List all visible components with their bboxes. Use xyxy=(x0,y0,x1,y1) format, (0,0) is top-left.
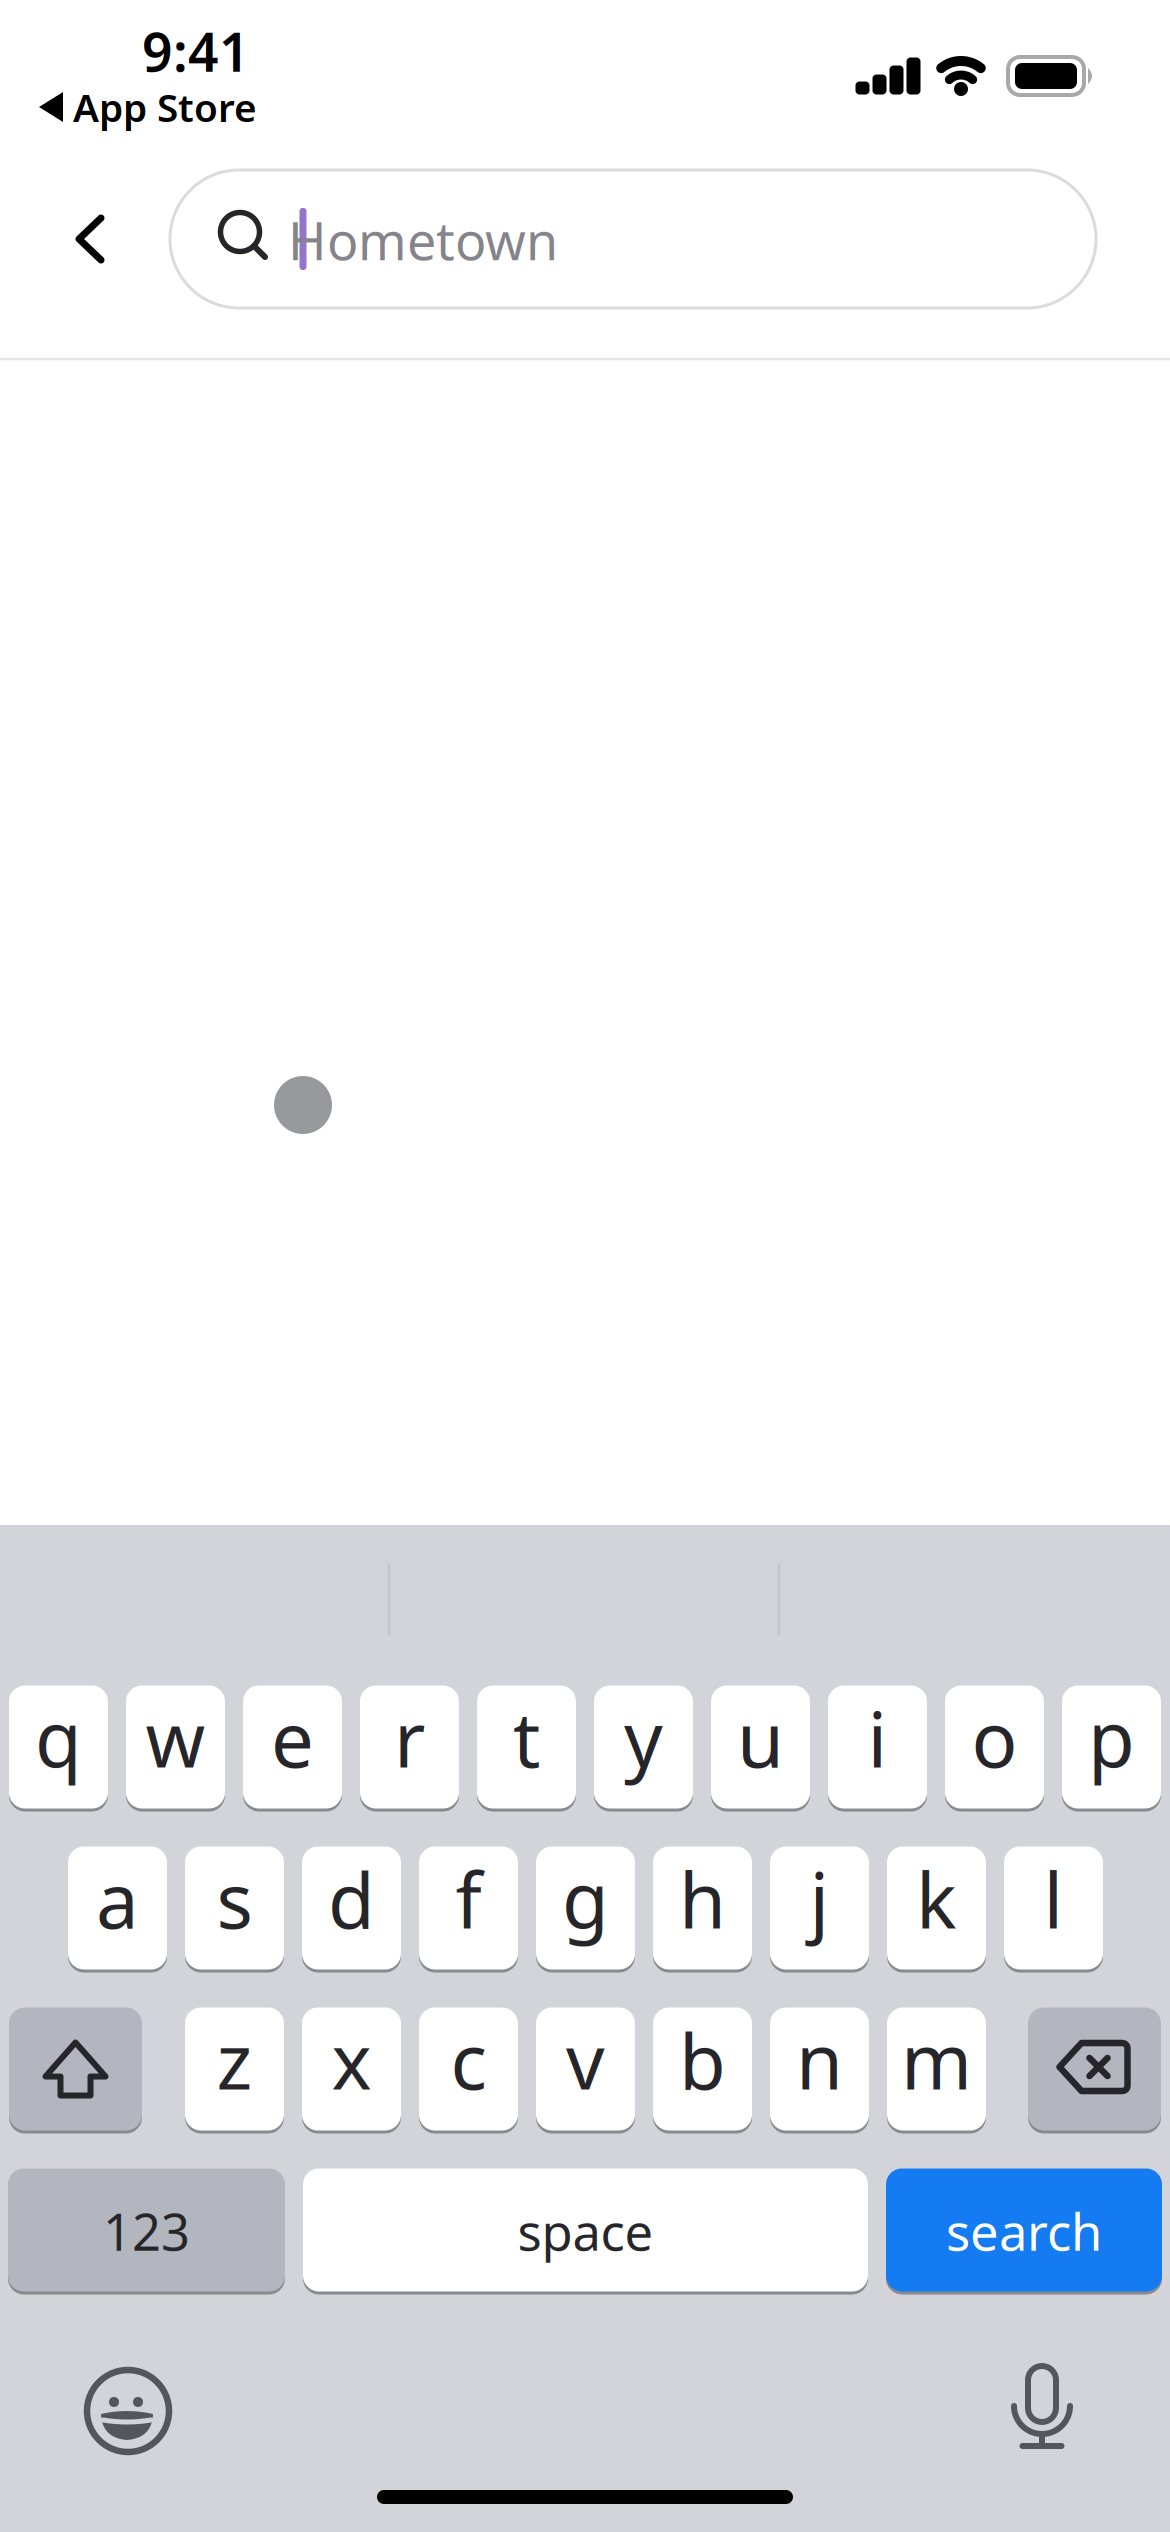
button[interactable]: s xyxy=(185,1845,284,1971)
staticText: App Store xyxy=(73,81,257,133)
staticText: r xyxy=(394,1687,425,1788)
staticText: search xyxy=(946,2197,1102,2265)
button[interactable]: r xyxy=(360,1684,459,1810)
button[interactable]: d xyxy=(302,1845,401,1971)
staticText: f xyxy=(455,1848,481,1949)
staticText: p xyxy=(1088,1687,1135,1788)
staticText: h xyxy=(679,1848,726,1949)
staticText: u xyxy=(737,1687,784,1788)
staticText: n xyxy=(796,2009,843,2110)
button[interactable]: x xyxy=(302,2006,401,2132)
button[interactable]: w xyxy=(126,1684,225,1810)
staticText: b xyxy=(679,2009,726,2110)
staticText: v xyxy=(566,2009,605,2110)
button[interactable]: u xyxy=(711,1684,810,1810)
button[interactable]: q xyxy=(9,1684,108,1810)
staticText: l xyxy=(1043,1848,1063,1949)
button[interactable]: Delete xyxy=(1028,2006,1161,2132)
button[interactable]: h xyxy=(653,1845,752,1971)
staticText: z xyxy=(216,2009,252,2110)
button[interactable]: g xyxy=(536,1845,635,1971)
button[interactable]: v xyxy=(536,2006,635,2132)
staticText: j xyxy=(809,1848,829,1949)
staticText: x xyxy=(331,2009,371,2110)
staticText: o xyxy=(971,1687,1017,1788)
button[interactable]: i xyxy=(828,1684,927,1810)
staticText: k xyxy=(916,1848,957,1949)
staticText: i xyxy=(867,1687,887,1788)
staticText: e xyxy=(271,1687,314,1788)
staticText: space xyxy=(517,2197,653,2265)
button[interactable]: Dictate xyxy=(1012,2364,1072,2452)
staticText: m xyxy=(901,2009,972,2110)
button[interactable]: m xyxy=(887,2006,986,2132)
button[interactable]: n xyxy=(770,2006,869,2132)
staticText: d xyxy=(328,1848,375,1949)
button[interactable]: z xyxy=(185,2006,284,2132)
button[interactable]: Emoji xyxy=(87,2370,169,2452)
staticText: 9:41 xyxy=(142,16,250,86)
button[interactable]: a xyxy=(68,1845,167,1971)
button[interactable]: o xyxy=(945,1684,1044,1810)
button[interactable]: b xyxy=(653,2006,752,2132)
button[interactable]: Back to App Store xyxy=(39,81,257,133)
button[interactable]: e xyxy=(243,1684,342,1810)
staticText: Hometown xyxy=(288,205,558,275)
staticText: 123 xyxy=(103,2197,190,2265)
staticText: g xyxy=(562,1848,609,1949)
button[interactable]: y xyxy=(594,1684,693,1810)
staticText: s xyxy=(216,1848,252,1949)
staticText: a xyxy=(96,1848,139,1949)
button[interactable]: Back xyxy=(75,215,105,263)
button[interactable]: space xyxy=(303,2167,868,2293)
staticText: w xyxy=(145,1687,205,1788)
button[interactable]: search xyxy=(886,2167,1162,2293)
button[interactable]: j xyxy=(770,1845,869,1971)
button[interactable]: 123 xyxy=(8,2167,285,2293)
button[interactable]: Search xyxy=(170,170,1096,308)
button[interactable]: p xyxy=(1062,1684,1161,1810)
staticText: q xyxy=(35,1687,82,1788)
button[interactable]: c xyxy=(419,2006,518,2132)
button[interactable]: l xyxy=(1004,1845,1103,1971)
staticText: c xyxy=(450,2009,486,2110)
button[interactable]: t xyxy=(477,1684,576,1810)
button[interactable]: f xyxy=(419,1845,518,1971)
staticText: y xyxy=(624,1687,663,1788)
staticText: t xyxy=(513,1687,540,1788)
button[interactable]: k xyxy=(887,1845,986,1971)
button[interactable]: Shift xyxy=(9,2006,142,2132)
